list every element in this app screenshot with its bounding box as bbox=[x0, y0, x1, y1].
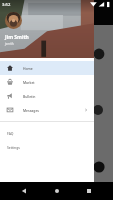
staticText: Settings bbox=[7, 145, 20, 150]
staticText: Messages bbox=[23, 108, 39, 113]
button[interactable]: Market bbox=[0, 75, 94, 89]
staticText: Jim Smith bbox=[5, 34, 29, 41]
staticText: Market bbox=[23, 80, 35, 85]
staticText: jsmith bbox=[5, 42, 14, 46]
button[interactable]: Recent apps bbox=[80, 182, 98, 200]
staticText: Home bbox=[23, 66, 33, 71]
button[interactable]: Home bbox=[48, 182, 66, 200]
button[interactable]: Messages bbox=[0, 103, 94, 117]
staticText: 3:52 bbox=[2, 2, 11, 8]
button[interactable]: FAQ bbox=[0, 126, 94, 140]
button[interactable]: Home bbox=[0, 61, 94, 75]
staticText: Bulletin bbox=[23, 94, 36, 99]
button[interactable]: Settings bbox=[0, 140, 94, 154]
staticText: FAQ bbox=[7, 131, 14, 136]
button[interactable]: Back bbox=[15, 182, 33, 200]
button[interactable]: Bulletin bbox=[0, 89, 94, 103]
